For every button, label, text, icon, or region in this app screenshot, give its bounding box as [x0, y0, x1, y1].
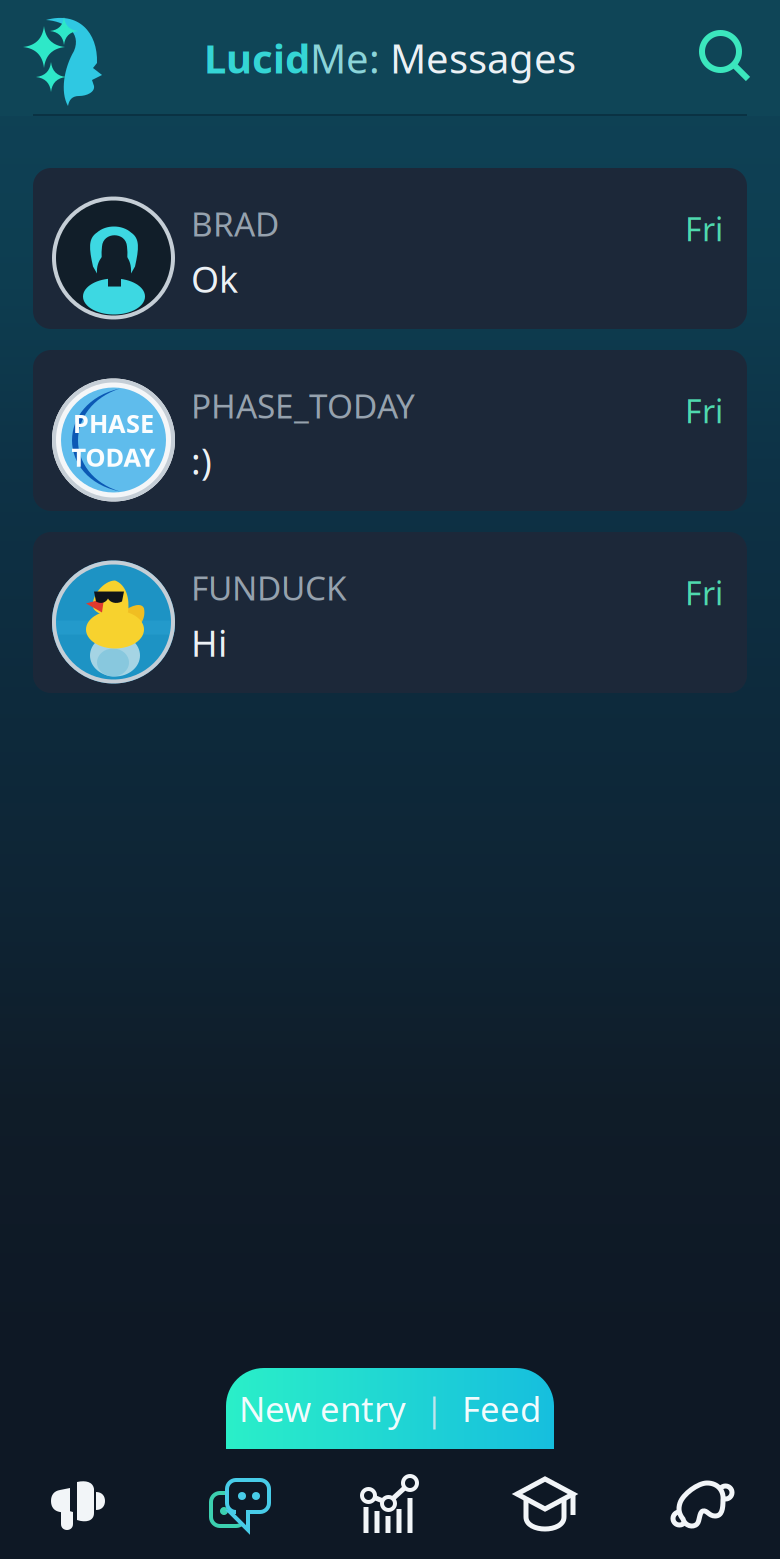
staticText: New entry: [239, 1385, 406, 1431]
button[interactable]: New entry: [226, 1368, 554, 1449]
staticText: Fri: [685, 389, 723, 432]
staticText: Me:: [310, 31, 380, 84]
staticText: :): [191, 437, 212, 485]
staticText: PHASE_TODAY: [191, 383, 415, 428]
button[interactable]: PHASE: [33, 350, 747, 511]
button[interactable]: Learn: [468, 1449, 624, 1559]
staticText: Ok: [191, 255, 238, 303]
button[interactable]: FUNDUCK: [33, 532, 747, 693]
button[interactable]: Sleep: [624, 1449, 780, 1559]
staticText: FUNDUCK: [191, 565, 347, 610]
staticText: Messages: [380, 31, 576, 84]
button[interactable]: Search: [702, 15, 780, 101]
staticText: Fri: [685, 571, 723, 614]
button[interactable]: Messages: [156, 1449, 312, 1559]
button[interactable]: Announcements: [0, 1449, 156, 1559]
staticText: Hi: [191, 619, 227, 667]
button[interactable]: LucidMe: [0, 8, 108, 108]
staticText: Feed: [462, 1385, 541, 1431]
staticText: BRAD: [191, 201, 279, 246]
staticText: Fri: [685, 207, 723, 250]
staticText: |: [425, 1386, 443, 1431]
staticText: TODAY: [71, 440, 155, 474]
button[interactable]: BRAD: [33, 168, 747, 329]
button[interactable]: Stats: [312, 1449, 468, 1559]
staticText: PHASE: [73, 406, 154, 440]
staticText: Lucid: [204, 31, 310, 84]
